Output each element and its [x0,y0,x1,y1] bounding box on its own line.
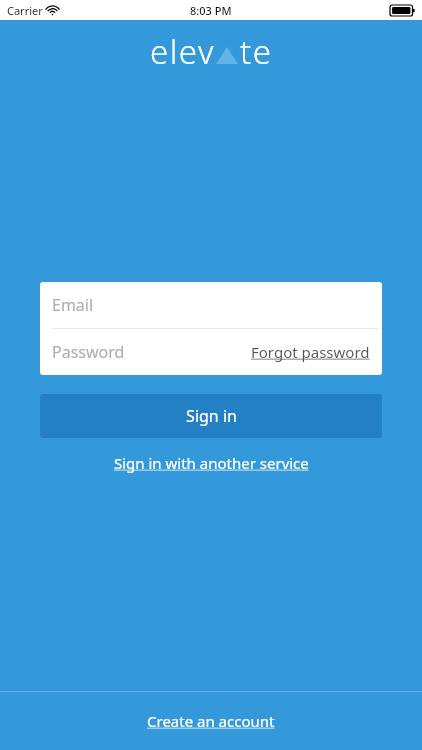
button[interactable]: Email [40,282,382,328]
staticText: Email [52,294,94,316]
button[interactable]: Create an account [137,705,285,737]
staticText: Password [52,341,125,363]
staticText: Carrier [7,3,43,18]
button[interactable]: Forgot password [239,334,382,370]
staticText: Forgot password [251,342,370,362]
button[interactable]: Sign in with another service [104,447,319,479]
staticText: 8:03 PM [190,3,232,18]
staticText: Create an account [147,711,275,731]
staticText: elev [150,29,215,74]
button[interactable]: Password [40,329,382,375]
staticText: Sign in with another service [114,453,309,473]
staticText: Sign in [186,405,237,427]
staticText: te [240,29,273,74]
button[interactable]: Sign in [40,394,382,438]
